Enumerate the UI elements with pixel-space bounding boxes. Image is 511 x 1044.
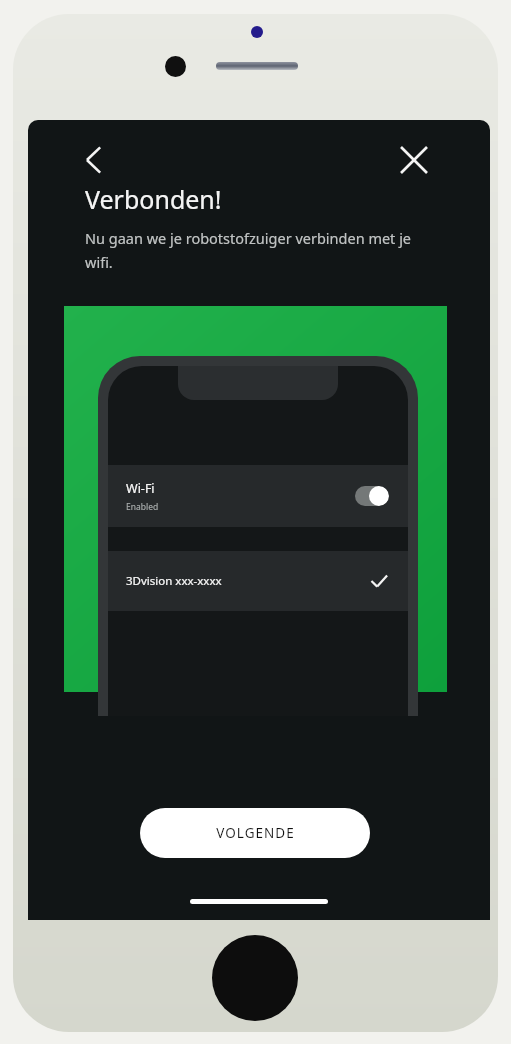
button[interactable]: Close bbox=[386, 132, 442, 188]
staticText: 3Dvision xxx-xxxx bbox=[126, 573, 222, 589]
staticText: Nu gaan we je robotstofzuiger verbinden … bbox=[85, 228, 440, 272]
button[interactable]: Back bbox=[66, 132, 122, 188]
button[interactable]: 3Dvision xxx-xxxx bbox=[108, 551, 408, 611]
button[interactable]: VOLGENDE bbox=[140, 808, 370, 858]
button[interactable]: Wi-Fi bbox=[108, 465, 408, 527]
button[interactable]: Wi-Fi toggle bbox=[355, 486, 389, 506]
staticText: Wi-Fi bbox=[126, 480, 155, 497]
staticText: Enabled bbox=[126, 501, 159, 513]
staticText: Verbonden! bbox=[85, 182, 222, 216]
staticText: VOLGENDE bbox=[216, 824, 295, 842]
